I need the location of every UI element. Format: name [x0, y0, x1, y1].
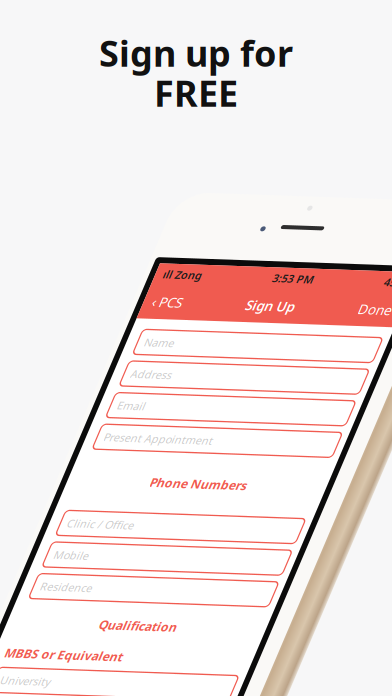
staticText: Phone Numbers [242, 471, 339, 487]
staticText: MBBS or Equivalent [171, 644, 289, 660]
staticText: Sign Up [262, 292, 311, 310]
staticText: ‹ PCS [169, 292, 199, 310]
staticText: Sign up for [99, 29, 293, 77]
staticText: 3:53 PM [277, 267, 318, 281]
staticText: Present Appointment [178, 429, 287, 443]
staticText: ıll Zong [168, 267, 207, 281]
staticText: University [178, 672, 228, 686]
staticText: Done [375, 292, 392, 310]
staticText: Residence [178, 578, 230, 593]
staticText: Mobile [178, 547, 213, 561]
staticText: Qualification [252, 613, 330, 629]
staticText: FREE [154, 69, 238, 117]
staticText: 45% [389, 267, 392, 281]
staticText: Clinic / Office [178, 515, 245, 529]
